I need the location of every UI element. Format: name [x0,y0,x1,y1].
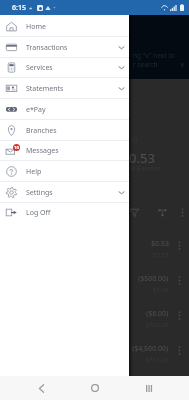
button[interactable]: Home [83,376,106,400]
staticText: Transactions [26,43,68,53]
staticText: Messages [26,146,59,156]
staticText: × [180,59,185,70]
staticText: Help [26,167,42,177]
button[interactable]: ($500.00) [131,270,181,305]
staticText: Settings [26,188,53,198]
staticText: 10 [14,145,19,151]
staticText: ($4,500.00) [132,344,169,354]
button[interactable]: Branches [0,120,129,141]
staticText: e*Pay [26,105,46,115]
button[interactable]: Services [0,57,129,78]
button[interactable]: ($4,500.00) [131,340,181,375]
button[interactable]: e*Pay [0,99,129,120]
button[interactable]: Home [0,16,129,37]
staticText: Statements [26,84,64,94]
button[interactable]: Transactions [0,37,129,58]
button[interactable]: ($6.00) [131,305,181,340]
staticText: ($6.00) [146,309,169,319]
button[interactable]: 10 [0,140,129,161]
staticText: Home [26,22,46,32]
button[interactable]: Statements [0,78,129,99]
button[interactable]: Back [30,376,53,400]
staticText: $0.53 [151,239,169,249]
staticText: Branches [26,126,57,136]
button[interactable]: $0.53 [131,235,181,270]
button[interactable]: Recents [137,376,160,400]
staticText: ng "v" next to r search [133,51,175,69]
button[interactable]: Log Off [0,202,129,223]
button[interactable]: Help [0,161,129,182]
staticText: 6:15 [12,3,26,13]
staticText: ($500.00) [138,274,169,284]
staticText: 0.53 [129,149,155,167]
staticText: Log Off [26,208,51,218]
staticText: le Balance [130,164,162,173]
button[interactable]: Settings [0,182,129,203]
staticText: Services [26,63,53,73]
staticText: M [131,136,138,146]
